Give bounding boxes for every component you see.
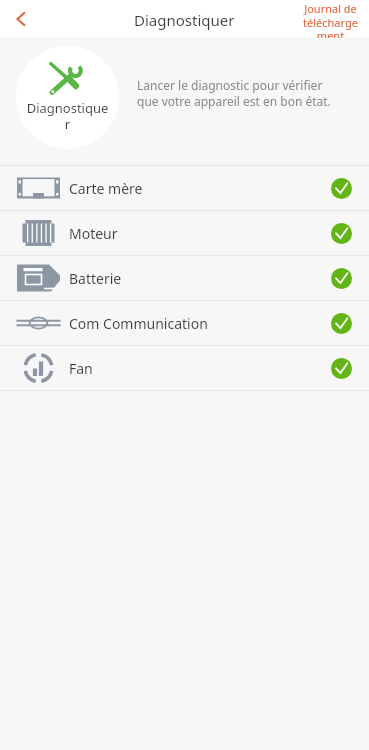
staticText: Carte mère [69, 179, 143, 198]
button[interactable]: Fan [0, 346, 369, 390]
button[interactable]: Journal de téléchargement [291, 0, 369, 37]
button[interactable]: Moteur [0, 211, 369, 255]
staticText: Moteur [69, 224, 118, 243]
button[interactable]: Carte mère [0, 166, 369, 210]
button[interactable]: Batterie [0, 256, 369, 300]
button[interactable]: Com Communication [0, 301, 369, 345]
staticText: Fan [69, 359, 93, 378]
staticText: Diagnostiquer [26, 99, 109, 132]
staticText: Journal de téléchargement [299, 1, 362, 38]
staticText: Batterie [69, 269, 122, 288]
button[interactable]: Diagnostiquer [16, 46, 119, 149]
button[interactable]: Back [0, 0, 42, 37]
staticText: Com Communication [69, 314, 208, 333]
staticText: Diagnostiquer [134, 10, 235, 30]
staticText: Lancer le diagnostic pour vérifier que v… [137, 77, 342, 110]
